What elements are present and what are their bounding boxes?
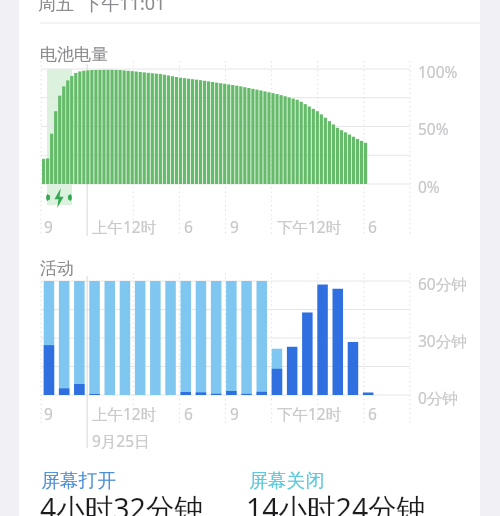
staticText: 9月25日 [92,430,150,451]
staticText: 下午12时 [277,403,342,424]
staticText: 9 [44,403,53,424]
staticText: 30分钟 [418,330,467,351]
staticText: 上午12时 [92,216,157,237]
staticText: 屏幕打开 [41,469,117,493]
staticText: 上午12时 [92,403,157,424]
staticText: 0% [418,176,440,197]
staticText: 活动 [40,258,74,279]
staticText: 9 [230,403,239,424]
staticText: 4小时32分钟 [40,489,203,516]
staticText: 周五 下午11:01 [38,0,166,16]
staticText: 6 [368,216,377,237]
staticText: 0分钟 [418,387,458,408]
staticText: 9 [44,216,53,237]
staticText: 6 [184,403,193,424]
staticText: 9 [230,216,239,237]
staticText: 6 [368,403,377,424]
staticText: 6 [184,216,193,237]
staticText: 60分钟 [418,273,467,294]
staticText: 14小时24分钟 [246,489,426,516]
staticText: 100% [418,61,458,82]
staticText: 屏幕关闭 [249,469,325,493]
staticText: 下午12时 [277,216,342,237]
staticText: 50% [418,118,449,139]
staticText: 电池电量 [40,44,108,65]
